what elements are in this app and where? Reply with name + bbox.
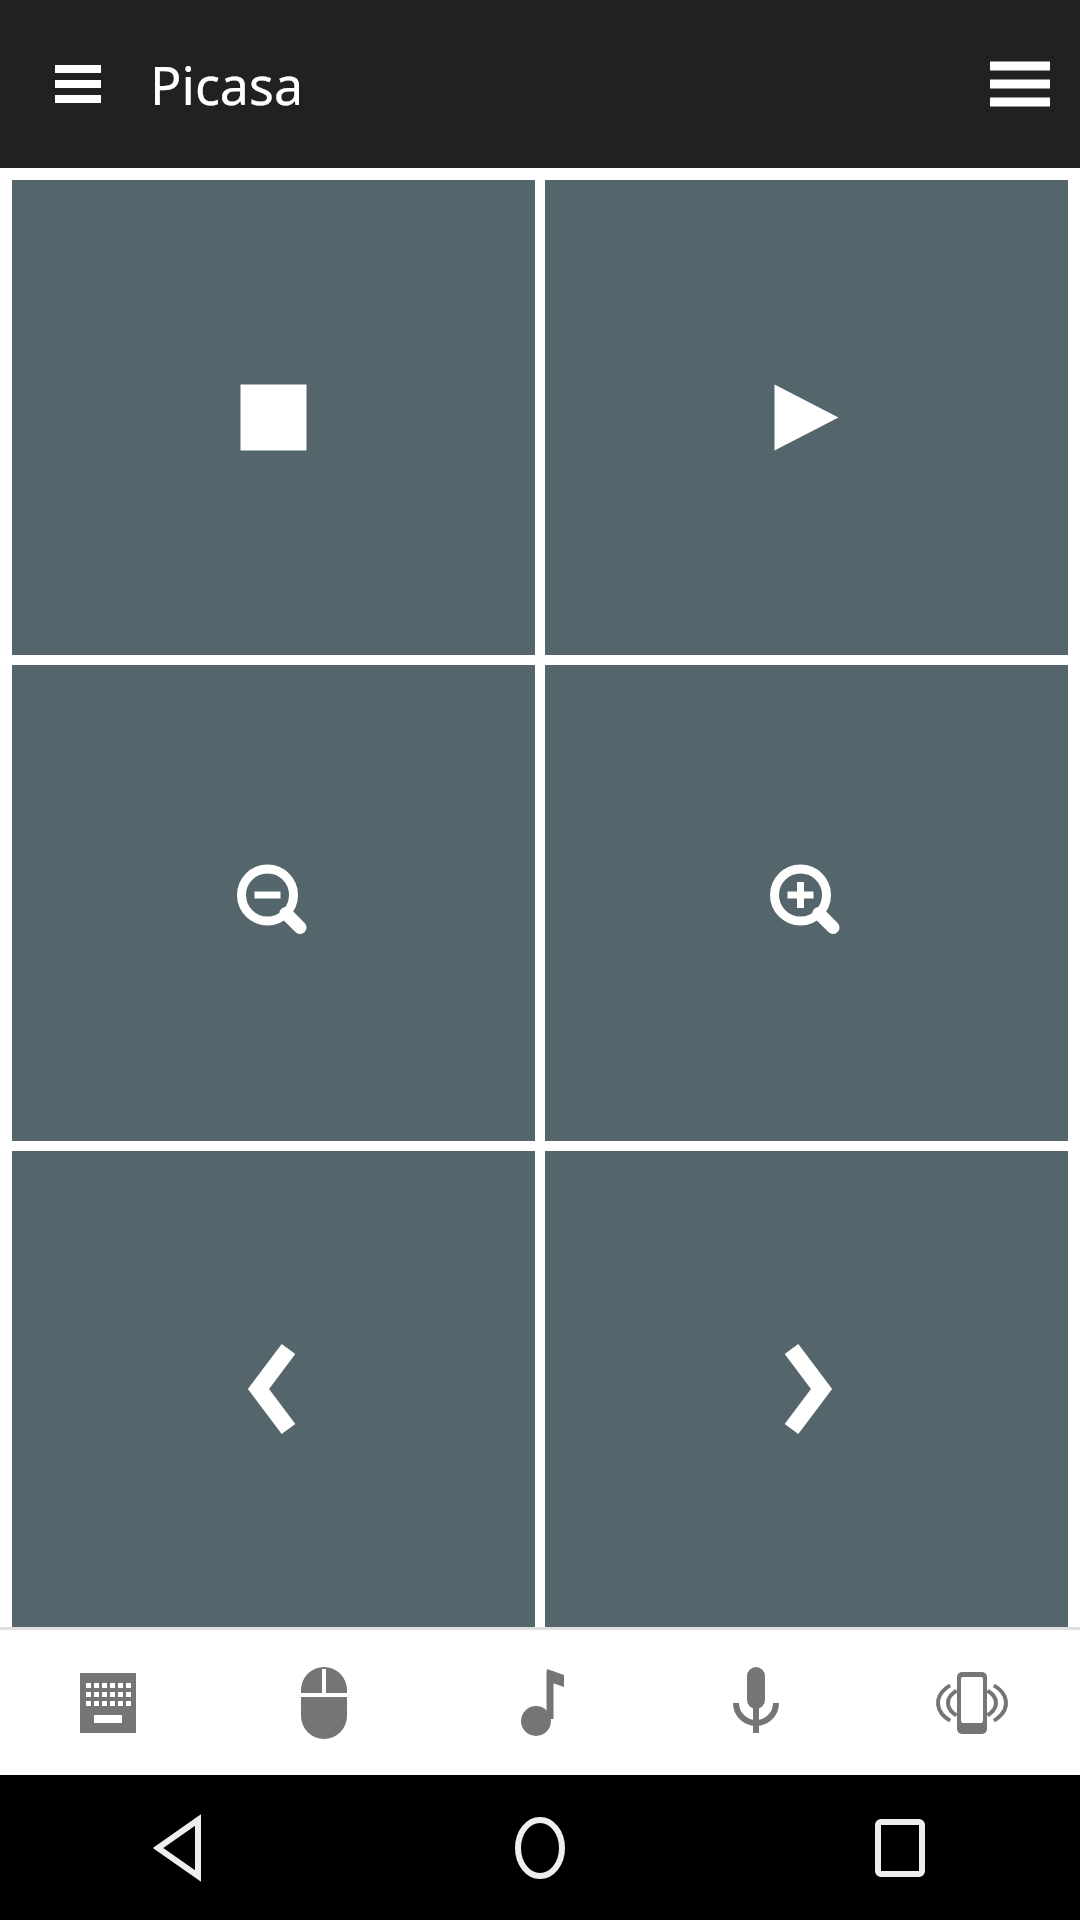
button[interactable]: Zoom out — [12, 665, 535, 1141]
staticText: Picasa — [150, 49, 304, 120]
button[interactable]: Keyboard — [0, 1630, 216, 1775]
button[interactable]: Zoom in — [545, 665, 1068, 1141]
button[interactable]: Previous — [12, 1151, 535, 1627]
button[interactable]: More options — [972, 36, 1068, 132]
button[interactable]: Home — [360, 1775, 720, 1920]
button[interactable]: Music — [432, 1630, 648, 1775]
button[interactable]: Vibrate — [864, 1630, 1080, 1775]
button[interactable]: Menu — [30, 36, 126, 132]
button[interactable]: Mouse — [216, 1630, 432, 1775]
button[interactable]: Back — [0, 1775, 360, 1920]
button[interactable]: Next — [545, 1151, 1068, 1627]
button[interactable]: Microphone — [648, 1630, 864, 1775]
button[interactable]: Recents — [720, 1775, 1080, 1920]
button[interactable]: Play — [545, 180, 1068, 655]
button[interactable]: Stop — [12, 180, 535, 655]
